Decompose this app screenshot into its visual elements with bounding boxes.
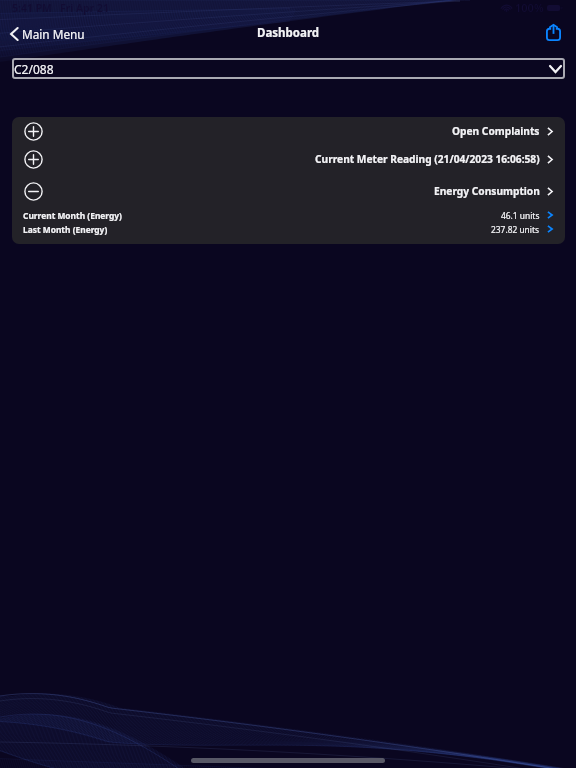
button[interactable]: Open Complaints [12,120,565,142]
staticText: 100% [515,0,544,15]
button[interactable]: Current Meter Reading (21/04/2023 16:06:… [12,148,565,170]
staticText: Energy Consumption [434,184,540,198]
staticText: Current Meter Reading (21/04/2023 16:06:… [315,152,540,166]
button[interactable]: Main Menu [6,23,89,45]
button[interactable]: C2/088 [12,58,565,79]
staticText: Dashboard [257,25,320,41]
staticText: 5:41 PM Fri Apr 21 [12,1,109,15]
button[interactable]: Current Month (Energy) [12,208,565,222]
button[interactable]: Last Month (Energy) [12,222,565,236]
staticText: Current Month (Energy) [23,210,122,221]
staticText: 237.82 units [491,224,540,235]
button[interactable]: Energy Consumption [12,180,565,202]
staticText: Main Menu [22,26,85,42]
staticText: Open Complaints [452,124,540,138]
button[interactable]: Share [538,16,568,48]
staticText: 46.1 units [501,210,540,221]
staticText: C2/088 [14,61,54,77]
staticText: Last Month (Energy) [23,224,108,235]
